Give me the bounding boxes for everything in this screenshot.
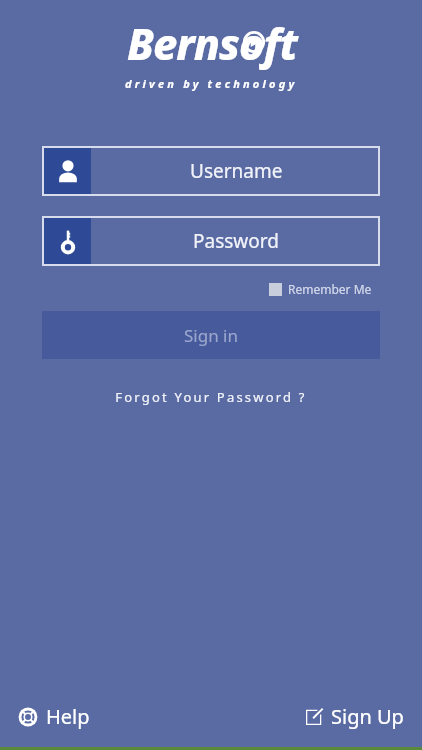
button[interactable]: Password <box>42 216 380 266</box>
staticText: Forgot Your Password ? <box>115 388 307 406</box>
staticText: driven by technology <box>125 76 298 91</box>
staticText: Help <box>46 703 90 730</box>
button[interactable]: Username <box>42 146 380 196</box>
staticText: Remember Me <box>288 281 372 297</box>
staticText: Password <box>193 228 279 254</box>
button[interactable]: Sign in <box>42 311 380 359</box>
button[interactable]: Help <box>14 697 94 736</box>
staticText: Bernsoft <box>127 14 297 73</box>
staticText: Username <box>190 158 283 184</box>
staticText: Sign in <box>184 324 238 347</box>
button[interactable]: Sign Up <box>302 697 408 736</box>
staticText: Sign Up <box>331 703 404 730</box>
button[interactable]: Remember Me <box>267 278 374 300</box>
button[interactable]: Forgot Your Password ? <box>101 383 321 411</box>
